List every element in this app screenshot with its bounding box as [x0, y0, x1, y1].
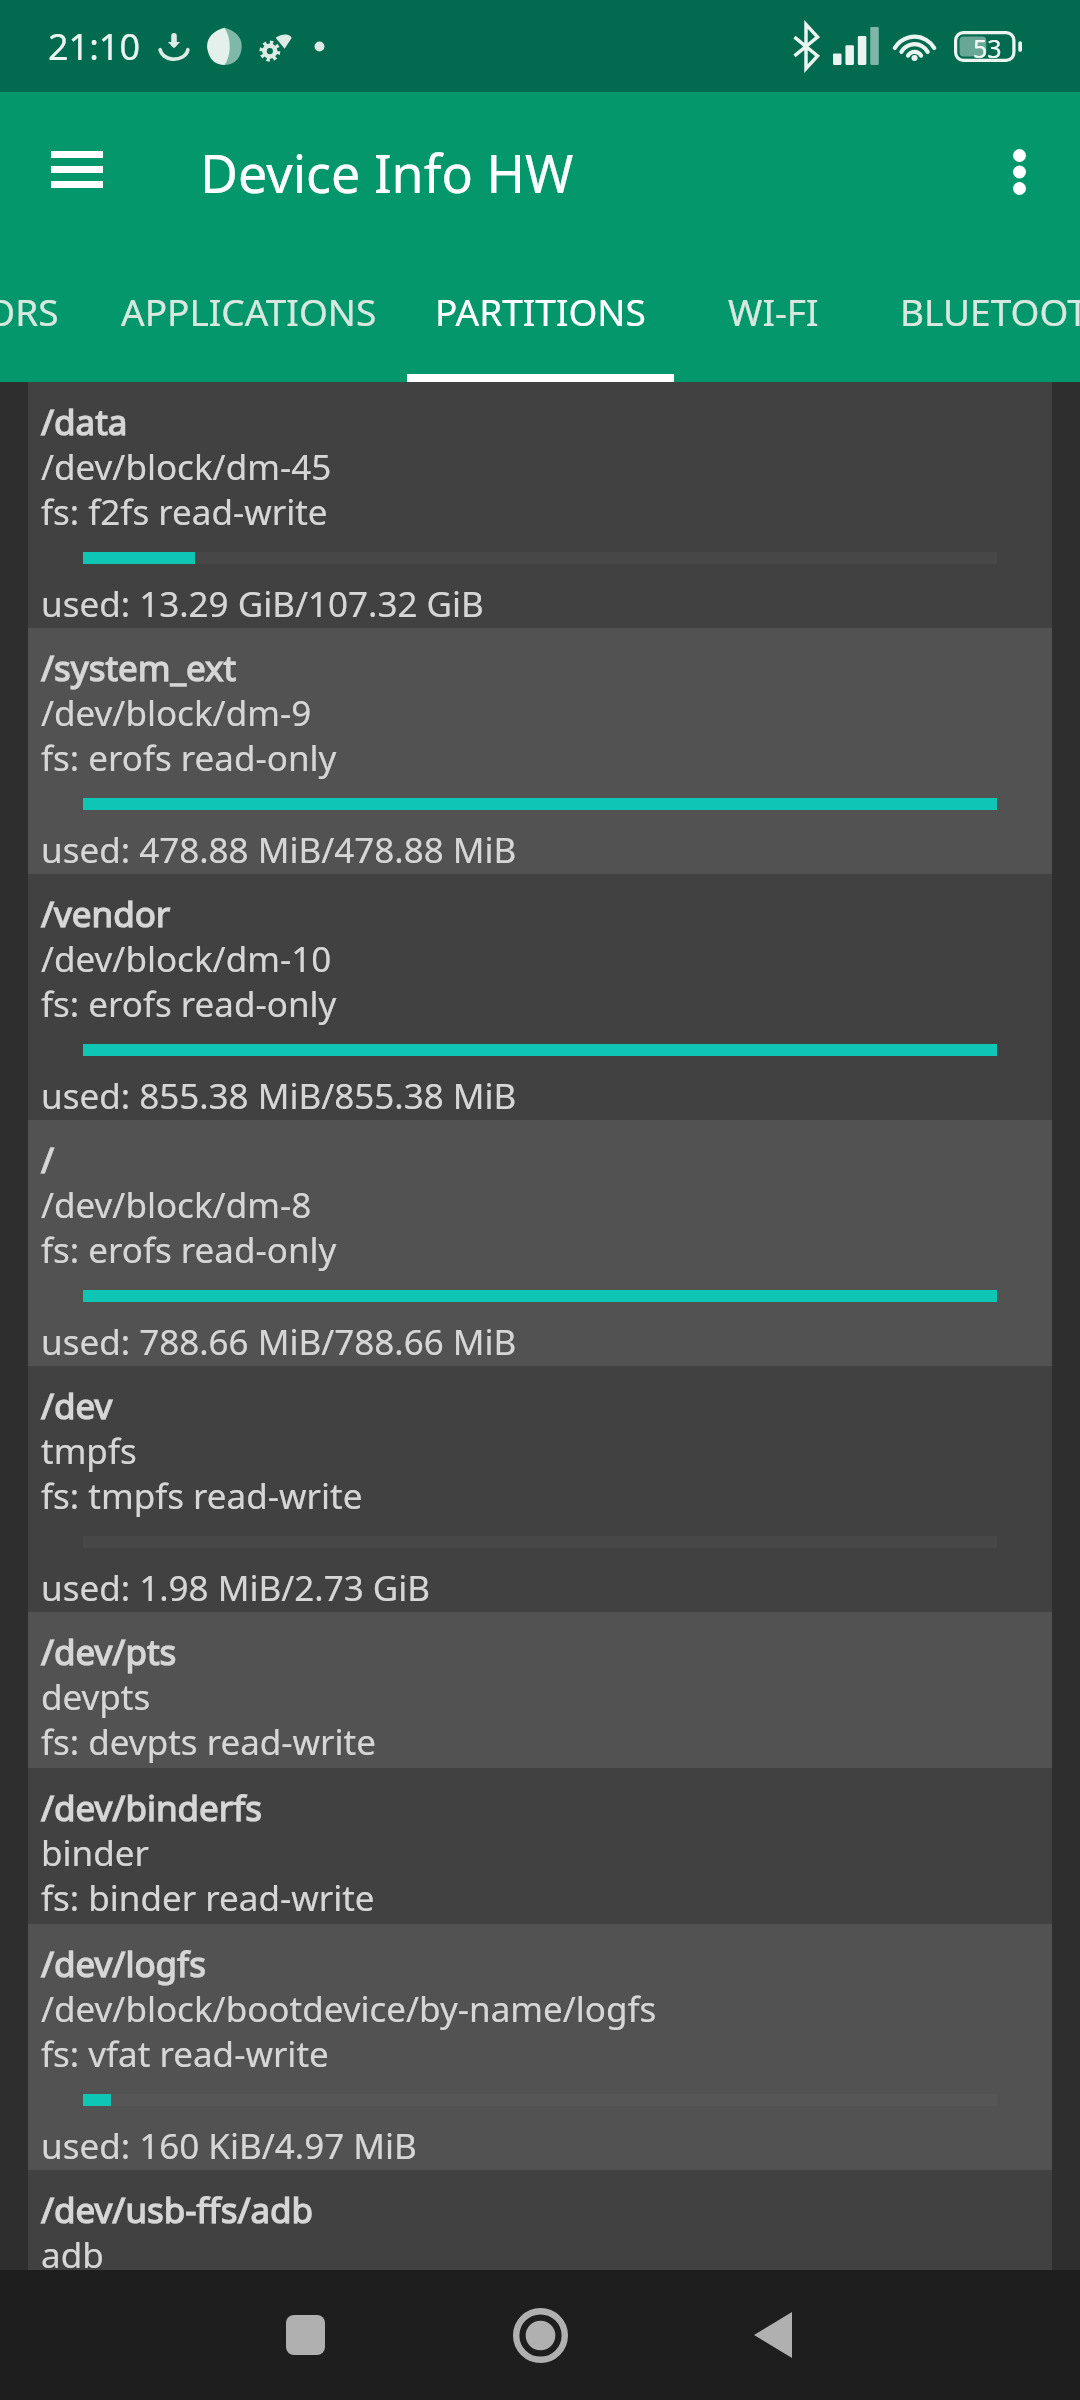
staticText: /vendor	[41, 890, 171, 938]
button[interactable]: PARTITIONS	[407, 252, 674, 382]
staticText: /system_ext	[41, 644, 237, 692]
button[interactable]: WI-FI	[674, 252, 873, 382]
staticText: /dev	[41, 1382, 113, 1430]
staticText: adb	[41, 2231, 104, 2268]
button[interactable]: /	[28, 1120, 1052, 1366]
button[interactable]: Home	[490, 2285, 590, 2385]
staticText: fs: binder read-write	[41, 1874, 375, 1922]
button[interactable]: Open navigation drawer	[29, 121, 125, 217]
button[interactable]: BLUETOOTH	[873, 252, 1080, 382]
staticText: fs: erofs read-only	[41, 1226, 337, 1274]
staticText: used: 855.38 MiB/855.38 MiB	[41, 1072, 517, 1120]
staticText: /dev/pts	[41, 1628, 177, 1676]
staticText: /dev/binderfs	[41, 1784, 263, 1832]
button[interactable]: /dev/logfs	[28, 1924, 1052, 2170]
staticText: 53	[973, 31, 1002, 62]
button[interactable]: Recent apps	[255, 2285, 355, 2385]
staticText: fs: functionfs read-write	[41, 2265, 433, 2268]
staticText: /dev/logfs	[41, 1940, 206, 1988]
button[interactable]: /system_ext	[28, 628, 1052, 874]
staticText: /dev/block/bootdevice/by-name/logfs	[41, 1985, 657, 2033]
button[interactable]: More options	[971, 124, 1067, 220]
staticText: used: 478.88 MiB/478.88 MiB	[41, 826, 517, 874]
staticText: used: 160 KiB/4.97 MiB	[41, 2122, 417, 2170]
button[interactable]: SENSORS	[0, 252, 91, 382]
staticText: fs: f2fs read-write	[41, 488, 328, 536]
staticText: /dev/block/dm-10	[41, 935, 332, 983]
staticText: BLUETOOTH	[900, 286, 1080, 336]
staticText: Device Info HW	[200, 137, 574, 208]
staticText: fs: tmpfs read-write	[41, 1472, 363, 1520]
staticText: fs: erofs read-only	[41, 734, 337, 782]
button[interactable]: /dev/pts	[28, 1612, 1052, 1768]
staticText: /	[41, 1136, 55, 1184]
staticText: fs: devpts read-write	[41, 1718, 376, 1766]
button[interactable]: /dev/usb-ffs/adb	[28, 2170, 1052, 2270]
button[interactable]: /data	[28, 382, 1052, 628]
staticText: /dev/usb-ffs/adb	[41, 2186, 314, 2234]
staticText: fs: erofs read-only	[41, 980, 337, 1028]
button[interactable]: /vendor	[28, 874, 1052, 1120]
staticText: tmpfs	[41, 1427, 137, 1475]
staticText: /data	[41, 398, 128, 446]
staticText: /dev/block/dm-45	[41, 443, 332, 491]
staticText: fs: vfat read-write	[41, 2030, 329, 2078]
staticText: PARTITIONS	[435, 286, 646, 336]
staticText: APPLICATIONS	[121, 286, 377, 336]
button[interactable]: Back	[723, 2285, 823, 2385]
staticText: used: 788.66 MiB/788.66 MiB	[41, 1318, 517, 1366]
staticText: binder	[41, 1829, 149, 1877]
staticText: /dev/block/dm-9	[41, 689, 312, 737]
staticText: devpts	[41, 1673, 151, 1721]
staticText: WI-FI	[728, 286, 819, 336]
staticText: /dev/block/dm-8	[41, 1181, 312, 1229]
staticText: used: 13.29 GiB/107.32 GiB	[41, 580, 484, 628]
staticText: SENSORS	[0, 286, 59, 336]
staticText: used: 1.98 MiB/2.73 GiB	[41, 1564, 431, 1612]
button[interactable]: /dev	[28, 1366, 1052, 1612]
button[interactable]: /dev/binderfs	[28, 1768, 1052, 1924]
button[interactable]: APPLICATIONS	[91, 252, 407, 382]
staticText: 21:10	[48, 22, 141, 71]
